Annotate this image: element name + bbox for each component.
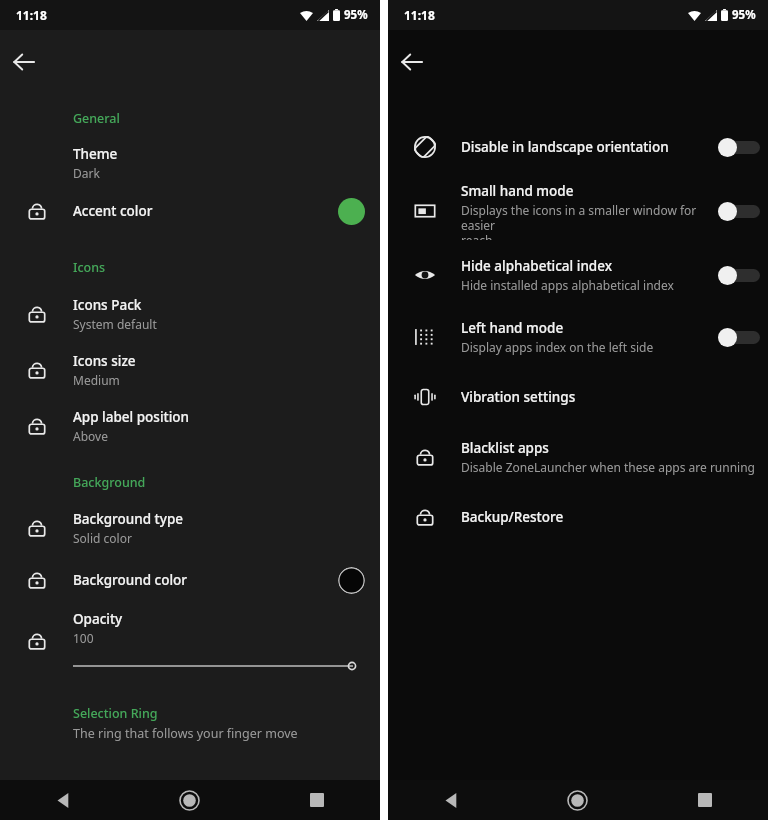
staticText: Display apps index on the left side (461, 339, 654, 355)
button[interactable]: Theme (0, 139, 380, 187)
staticText: Displays the icons in a smaller window f… (461, 202, 698, 240)
staticText: Icons Pack (73, 296, 142, 314)
staticText: Accent color (73, 202, 153, 220)
button[interactable]: Background type (0, 501, 380, 555)
staticText: Background color (73, 571, 188, 589)
button[interactable]: Icons Pack (0, 286, 380, 342)
staticText: Disable ZoneLauncher when these apps are… (461, 459, 755, 475)
staticText: Solid color (73, 530, 132, 546)
button[interactable]: Icons size (0, 342, 380, 398)
staticText: Background type (73, 510, 184, 528)
staticText: Left hand mode (461, 319, 564, 337)
staticText: App label position (73, 408, 190, 426)
staticText: Theme (73, 145, 118, 163)
button[interactable] (718, 135, 760, 159)
button[interactable]: Small hand mode (388, 182, 768, 240)
button[interactable]: Home (126, 780, 253, 820)
button[interactable]: Recents (253, 780, 380, 820)
button[interactable]: Hide alphabetical index (388, 250, 768, 300)
staticText: Disable in landscape orientation (461, 138, 669, 156)
button[interactable]: Left hand mode (388, 312, 768, 362)
staticText: Icons (73, 259, 106, 276)
staticText: Above (73, 428, 108, 444)
button[interactable]: Back (0, 38, 48, 86)
staticText: System default (73, 316, 157, 332)
button[interactable] (718, 325, 760, 349)
staticText: Background (73, 474, 146, 491)
staticText: 95% (732, 7, 756, 23)
staticText: General (73, 110, 120, 127)
button[interactable]: Background color (0, 555, 380, 605)
staticText: Selection Ring (73, 705, 158, 722)
button[interactable]: Home (514, 780, 641, 820)
staticText: The ring that follows your finger move (73, 725, 298, 742)
button[interactable]: Backup/Restore (388, 494, 768, 540)
button[interactable]: Opacity (0, 605, 380, 677)
button[interactable]: Back (388, 38, 436, 86)
button[interactable]: Accent color (0, 187, 380, 235)
staticText: Hide alphabetical index (461, 257, 613, 275)
button[interactable]: Vibration settings (388, 374, 768, 420)
staticText: Hide installed apps alphabetical index (461, 277, 674, 293)
staticText: Blacklist apps (461, 439, 549, 457)
staticText: Vibration settings (461, 388, 576, 406)
staticText: 95% (344, 7, 368, 23)
staticText: Dark (73, 165, 100, 181)
button[interactable]: Accent color swatch (338, 198, 365, 225)
button[interactable]: Disable in landscape orientation (388, 124, 768, 170)
staticText: Small hand mode (461, 182, 574, 200)
staticText: Opacity (73, 610, 123, 628)
staticText: Backup/Restore (461, 508, 564, 526)
staticText: Medium (73, 372, 120, 388)
staticText: 11:18 (404, 7, 435, 23)
button[interactable]: Back (0, 780, 126, 820)
button[interactable]: Back (388, 780, 514, 820)
staticText: Icons size (73, 352, 136, 370)
staticText: 100 (73, 630, 94, 646)
button[interactable]: App label position (0, 398, 380, 454)
staticText: 11:18 (16, 7, 47, 23)
button[interactable]: Background color swatch (338, 567, 365, 594)
button[interactable]: Recents (641, 780, 768, 820)
button[interactable] (718, 263, 760, 287)
button[interactable]: Blacklist apps (388, 432, 768, 482)
button[interactable] (718, 199, 760, 223)
